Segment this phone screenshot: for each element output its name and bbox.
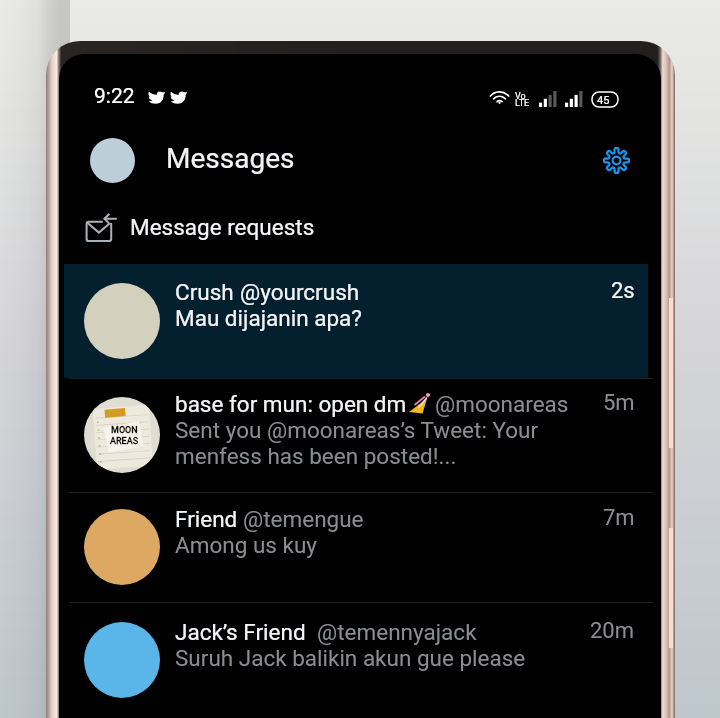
staticText: AREAS — [110, 436, 139, 447]
staticText: Among us kuy — [175, 532, 317, 558]
staticText: 20m — [590, 618, 635, 644]
staticText: 9:22 — [94, 84, 135, 109]
staticText: Message requests — [130, 214, 315, 240]
staticText: @yourcrush — [240, 279, 360, 305]
staticText: @moonareas — [435, 391, 569, 417]
button[interactable]: MOON — [64, 378, 648, 492]
staticText: @temengue — [243, 506, 364, 532]
staticText: Friend — [175, 506, 243, 532]
staticText: 7m — [603, 505, 635, 531]
staticText: Vo — [515, 91, 526, 102]
staticText: menfess has been posted!... — [175, 443, 457, 469]
staticText: 5m — [603, 390, 635, 416]
button[interactable]: Settings — [593, 137, 639, 183]
button[interactable]: Profile — [90, 138, 135, 183]
staticText: 45 — [597, 94, 610, 107]
staticText: Sent you @moonareas’s Tweet: Your — [175, 417, 539, 443]
button[interactable]: Friend — [64, 492, 648, 602]
button[interactable]: Message requests — [64, 195, 648, 264]
staticText: @temennyajack — [317, 619, 477, 645]
staticText: base for mun: open dm — [175, 391, 407, 417]
staticText: Jack’s Friend — [175, 619, 317, 645]
staticText: Suruh Jack balikin akun gue please — [175, 645, 526, 671]
button[interactable]: Jack’s Friend — [64, 602, 648, 718]
staticText: Crush — [175, 279, 240, 305]
staticText: Mau dijajanin apa? — [175, 305, 362, 331]
button[interactable]: Crush — [64, 264, 648, 378]
staticText: 2s — [611, 278, 635, 304]
staticText: MOON — [111, 425, 138, 436]
staticText: LTE — [515, 98, 530, 109]
staticText: Messages — [166, 142, 295, 175]
